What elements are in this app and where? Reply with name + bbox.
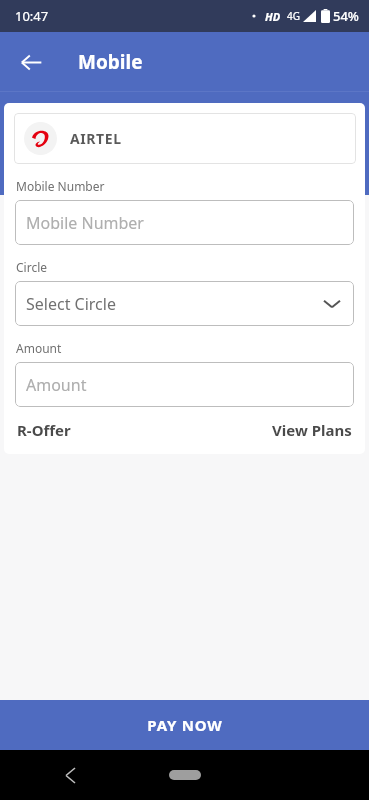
- staticText: Mobile Number: [26, 212, 144, 234]
- staticText: R-Offer: [17, 420, 71, 440]
- button[interactable]: Back: [50, 755, 90, 795]
- button[interactable]: Amount: [15, 362, 354, 407]
- button[interactable]: Back: [10, 41, 52, 83]
- button[interactable]: PAY NOW: [0, 700, 369, 750]
- button[interactable]: View Plans: [270, 416, 354, 444]
- staticText: Mobile: [78, 49, 143, 75]
- staticText: PAY NOW: [147, 715, 223, 735]
- staticText: AIRTEL: [70, 129, 122, 148]
- staticText: Amount: [16, 340, 62, 356]
- staticText: 54%: [333, 7, 359, 25]
- button[interactable]: Select Circle: [15, 281, 354, 326]
- button[interactable]: Mobile Number: [15, 200, 354, 245]
- staticText: Amount: [26, 374, 87, 396]
- button[interactable]: AIRTEL: [14, 113, 356, 164]
- staticText: 4G: [287, 9, 300, 23]
- button[interactable]: R-Offer: [15, 416, 73, 444]
- staticText: View Plans: [272, 420, 352, 440]
- staticText: Mobile Number: [16, 178, 105, 194]
- staticText: HD: [265, 9, 281, 24]
- staticText: Circle: [16, 259, 48, 275]
- staticText: 10:47: [15, 7, 49, 25]
- button[interactable]: Home: [169, 770, 201, 780]
- staticText: Select Circle: [26, 293, 116, 315]
